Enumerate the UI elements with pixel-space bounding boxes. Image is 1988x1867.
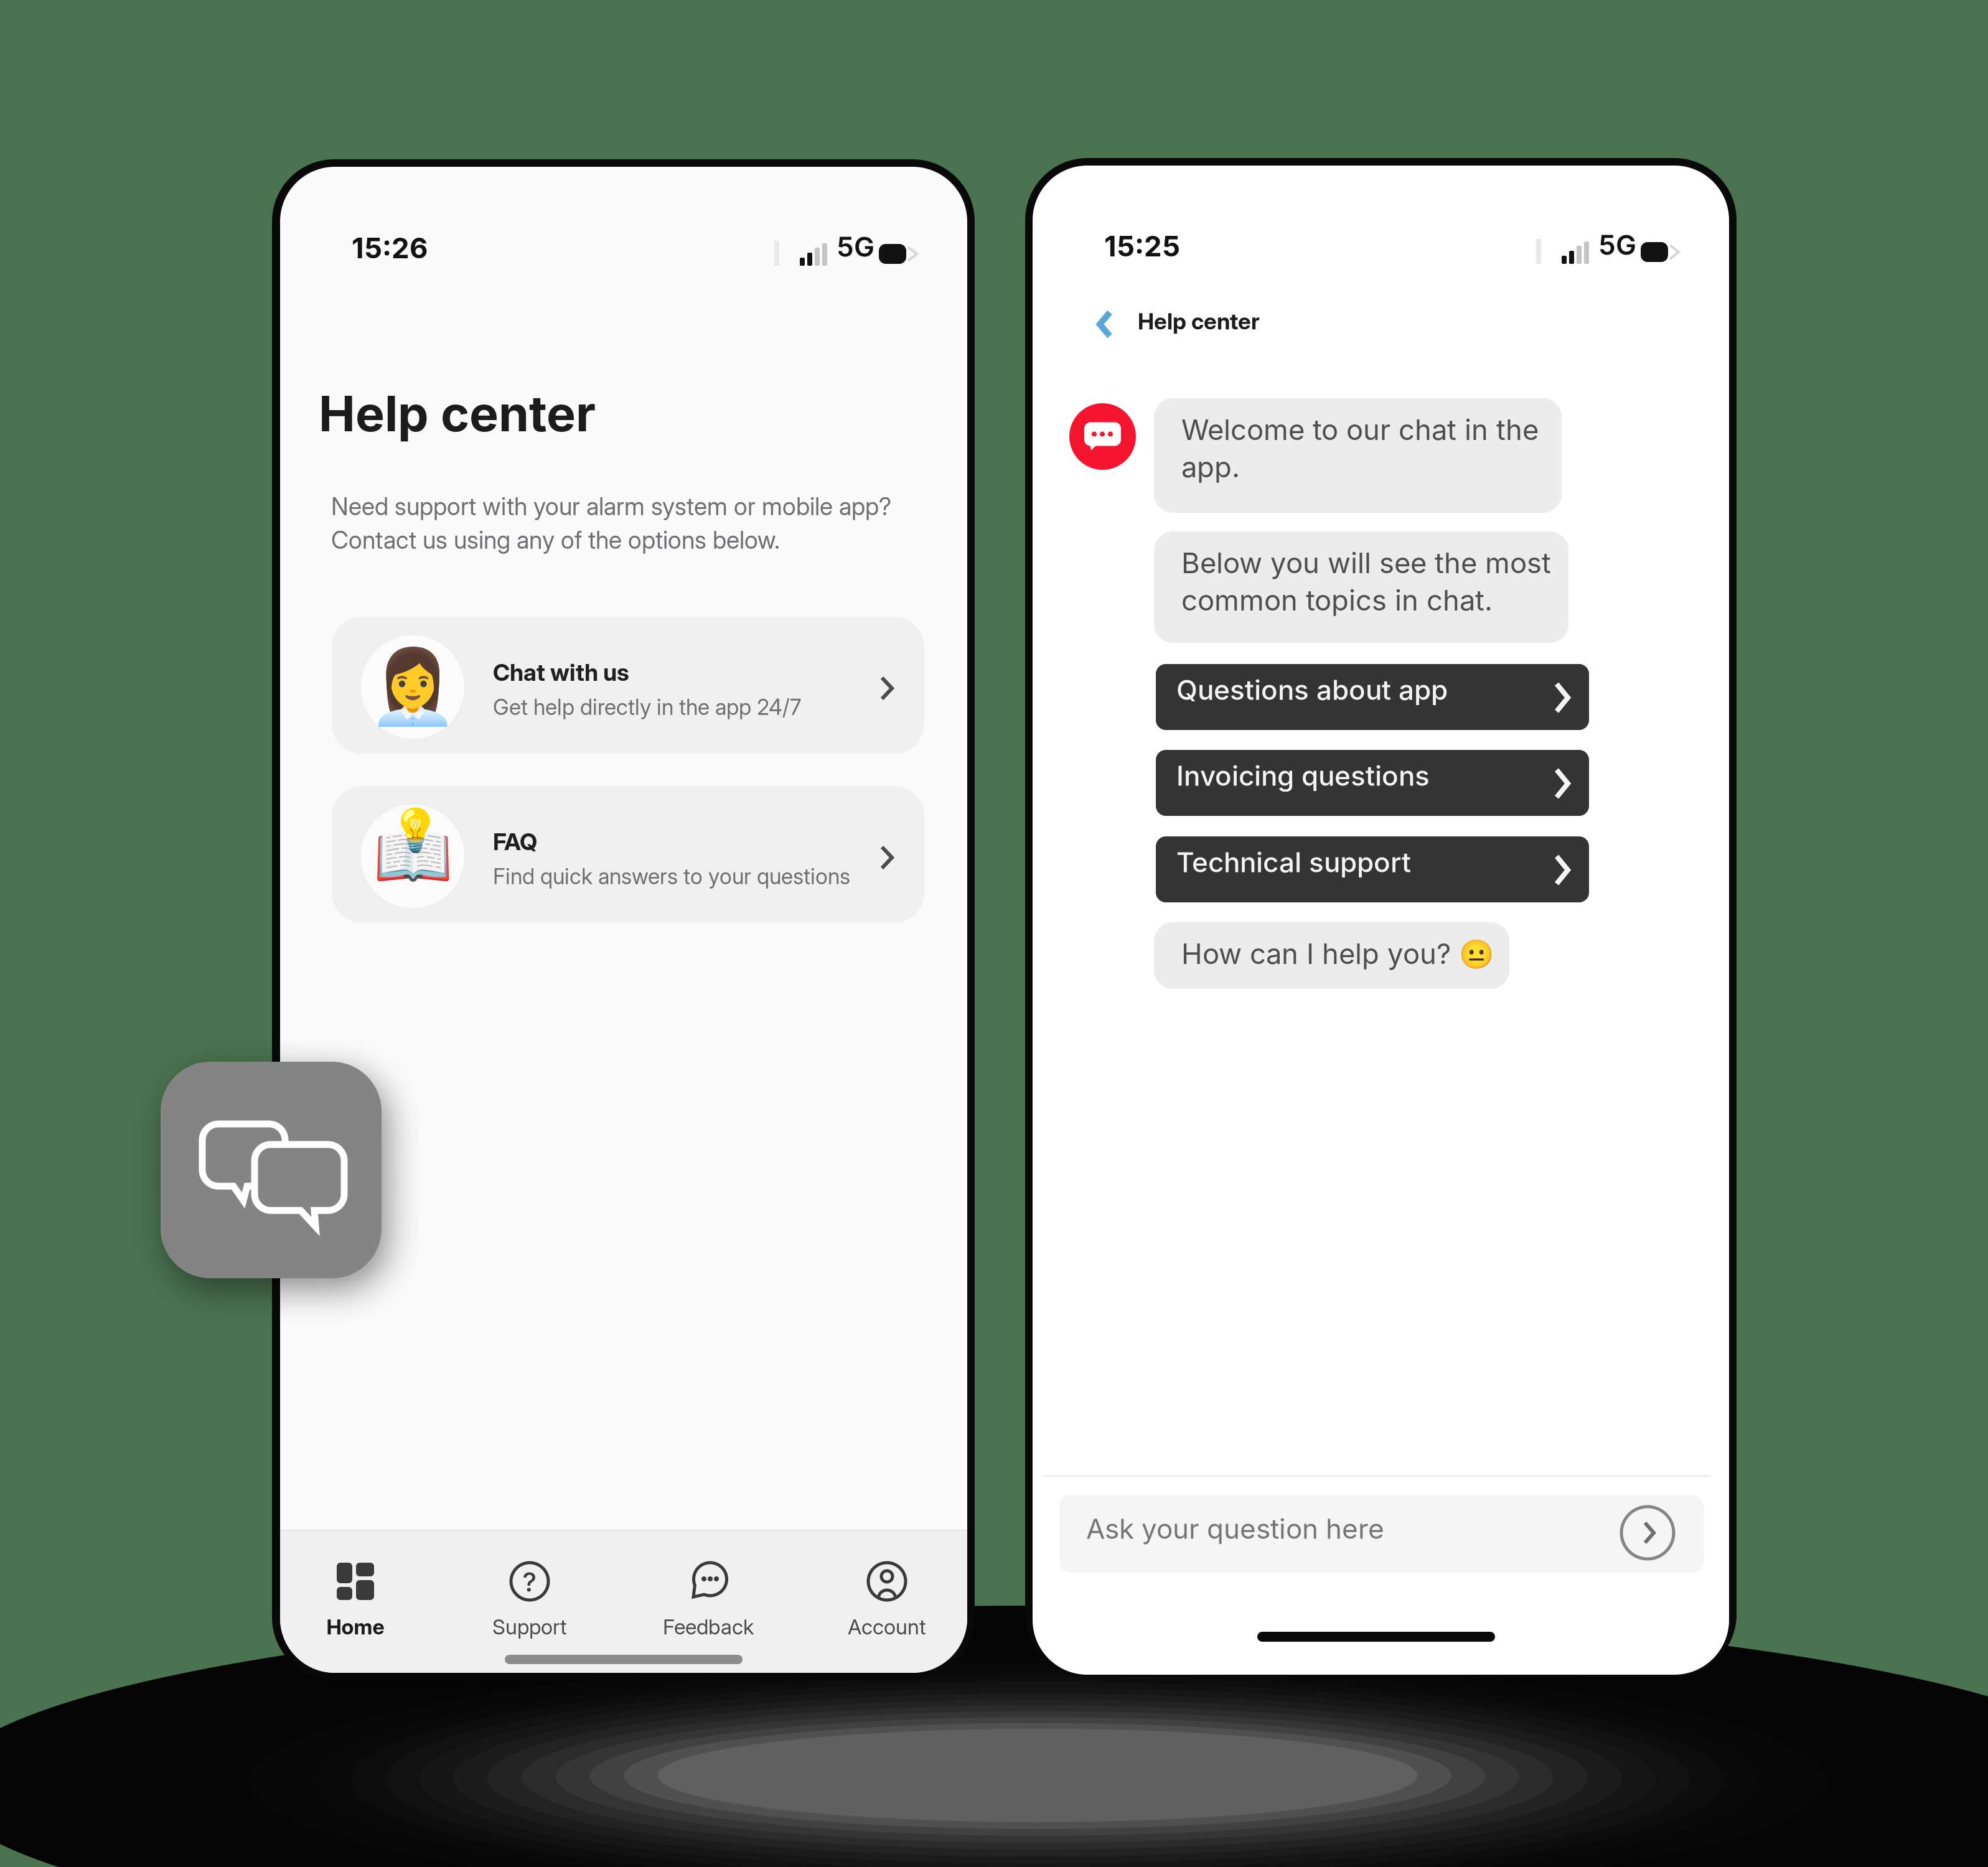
staticText: Questions about app (1176, 673, 1448, 706)
button[interactable]: Ask your question here (1059, 1495, 1704, 1573)
staticText: Below you will see the most (1181, 546, 1551, 580)
staticText: Get help directly in the app 24/7 (493, 694, 801, 720)
staticText: Chat with us (493, 658, 629, 686)
staticText: 15:25 (1104, 229, 1180, 263)
button[interactable]: Send message (1621, 1506, 1674, 1560)
staticText: Welcome to our chat in the (1181, 413, 1539, 447)
staticText: Help center (1138, 308, 1260, 335)
staticText: 5G (837, 230, 874, 263)
staticText: 💡 (389, 806, 441, 854)
staticText: Invoicing questions (1176, 759, 1430, 792)
staticText: Find quick answers to your questions (493, 863, 850, 889)
staticText: Technical support (1176, 846, 1411, 879)
button[interactable]: 👩‍💼 (332, 617, 924, 754)
button[interactable]: Technical support (1156, 836, 1589, 902)
staticText: Support (492, 1614, 567, 1639)
staticText: 👩‍💼 (368, 645, 457, 729)
staticText: 📖 (373, 818, 453, 894)
staticText: Contact us using any of the options belo… (331, 525, 780, 554)
button[interactable]: Account (806, 1558, 968, 1645)
button[interactable]: Questions about app (1156, 664, 1589, 730)
staticText: Help center (319, 384, 596, 443)
button[interactable]: Invoicing questions (1156, 750, 1589, 816)
staticText: app. (1181, 450, 1240, 484)
button[interactable]: Help center (1082, 296, 1369, 353)
staticText: FAQ (493, 828, 537, 856)
button[interactable]: 📖 (332, 786, 924, 923)
staticText: 5G (1598, 228, 1636, 261)
staticText: Feedback (663, 1614, 754, 1639)
staticText: Ask your question here (1086, 1512, 1384, 1545)
staticText: ? (523, 1566, 537, 1598)
staticText: 15:26 (352, 231, 428, 265)
staticText: common topics in chat. (1181, 583, 1493, 617)
staticText: Need support with your alarm system or m… (331, 492, 891, 521)
button[interactable]: ? (449, 1558, 611, 1645)
staticText: Account (848, 1614, 926, 1639)
staticText: Home (326, 1614, 384, 1639)
staticText: How can I help you? 😐 (1181, 937, 1494, 971)
button[interactable]: Feedback (627, 1558, 789, 1645)
button[interactable]: Home (274, 1558, 436, 1645)
